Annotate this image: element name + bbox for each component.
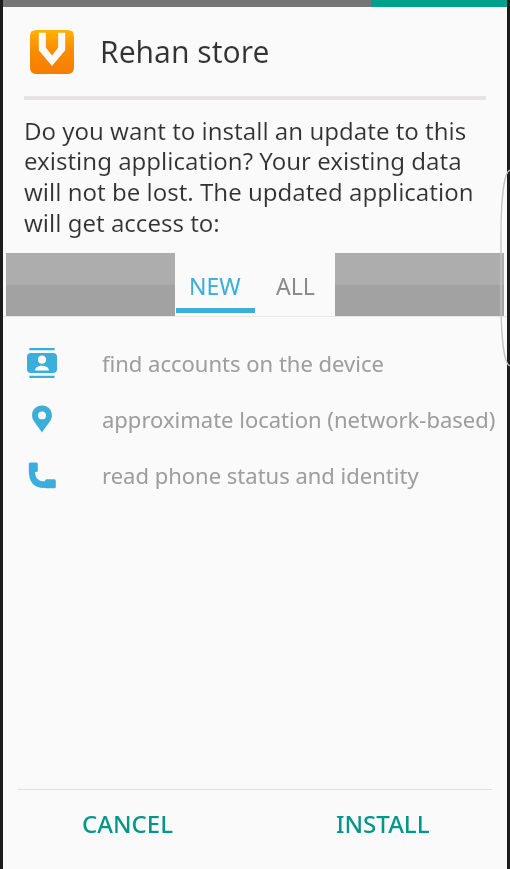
staticText: find accounts on the device: [102, 348, 384, 378]
other: Location permission: [27, 404, 57, 434]
staticText: approximate location (network-based): [102, 404, 496, 434]
staticText: CANCEL: [82, 807, 174, 840]
other: Phone permission: [27, 460, 57, 490]
staticText: Do you want to install an update to this…: [24, 114, 480, 239]
button[interactable]: ALL: [255, 253, 335, 317]
staticText: ALL: [276, 270, 315, 301]
button[interactable]: NEW: [175, 253, 255, 317]
other: Accounts permission: [27, 348, 57, 378]
staticText: INSTALL: [336, 807, 430, 840]
button[interactable]: CANCEL: [0, 790, 255, 857]
button[interactable]: Phone permission: [0, 447, 510, 503]
button[interactable]: INSTALL: [255, 790, 510, 857]
staticText: Rehan store: [100, 31, 270, 72]
staticText: read phone status and identity: [102, 460, 419, 490]
button[interactable]: Location permission: [0, 391, 510, 447]
staticText: NEW: [189, 270, 241, 301]
button[interactable]: Accounts permission: [0, 335, 510, 391]
